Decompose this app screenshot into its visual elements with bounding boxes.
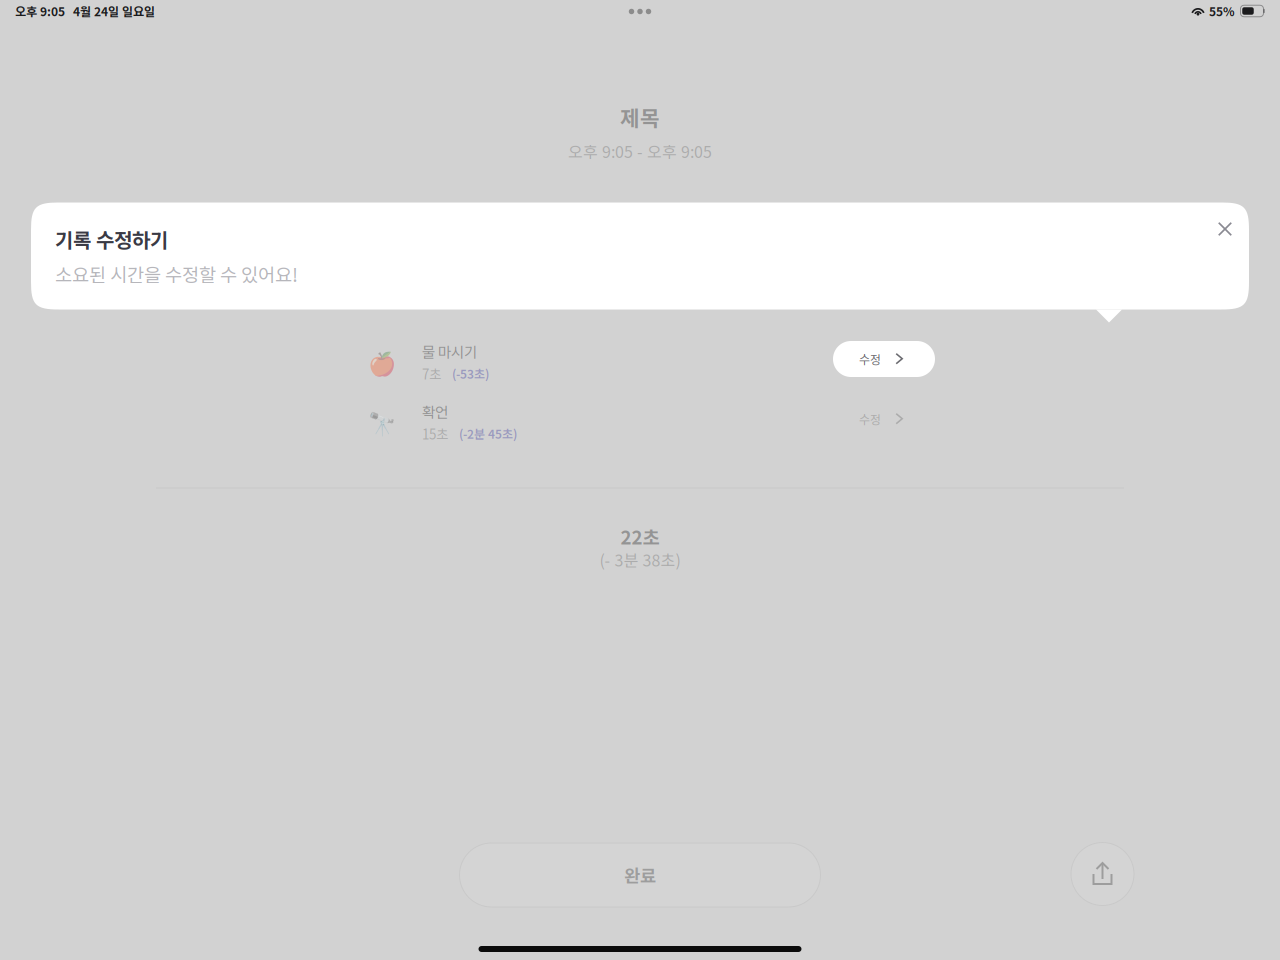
staticText: 확언 <box>422 401 448 422</box>
staticText: 오후 9:05 - 오후 9:05 <box>568 139 712 163</box>
button[interactable]: 공유 <box>1071 842 1134 905</box>
staticText: 기록 수정하기 <box>55 224 168 253</box>
staticText: 7초 <box>422 364 441 383</box>
button[interactable]: 🍎 <box>366 336 833 388</box>
button[interactable]: 완료 <box>459 843 820 907</box>
staticText: 4월 24일 일요일 <box>73 2 155 20</box>
button[interactable]: 🔭 <box>366 396 833 448</box>
button[interactable]: 수정 <box>833 344 935 380</box>
staticText: (- 3분 38초) <box>599 548 680 571</box>
staticText: 15초 <box>422 424 448 443</box>
button[interactable]: 수정 <box>833 404 935 440</box>
button[interactable]: 닫기 <box>1203 207 1247 251</box>
staticText: 55% <box>1209 2 1235 20</box>
staticText: 소요된 시간을 수정할 수 있어요! <box>55 260 298 287</box>
staticText: (-53초) <box>452 365 489 382</box>
staticText: 완료 <box>624 862 656 888</box>
staticText: 제목 <box>620 101 660 132</box>
staticText: (-2분 45초) <box>459 425 517 442</box>
staticText: 🔭 <box>368 411 396 437</box>
staticText: 🍎 <box>368 351 396 377</box>
staticText: 물 마시기 <box>422 341 477 362</box>
staticText: 22초 <box>620 523 659 550</box>
staticText: 수정 <box>859 350 881 368</box>
staticText: 수정 <box>859 410 881 428</box>
staticText: 오후 9:05 <box>15 2 65 20</box>
